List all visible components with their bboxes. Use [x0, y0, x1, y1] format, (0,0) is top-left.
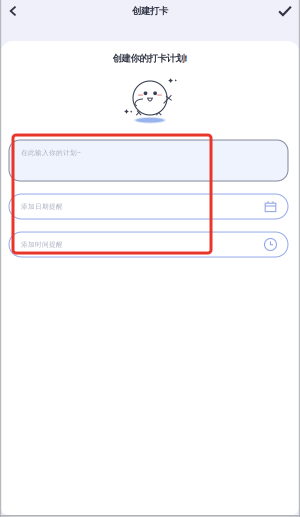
staticText: 创建打卡 — [132, 5, 168, 17]
button[interactable]: Back — [2, 0, 24, 22]
button[interactable]: Save — [273, 0, 297, 22]
button[interactable]: Add time reminder — [9, 232, 288, 257]
button[interactable]: Add date reminder — [9, 194, 288, 219]
staticText: 添加时间提醒 — [21, 240, 63, 249]
staticText: 添加日期提醒 — [21, 202, 63, 211]
staticText: 在此输入你的计划~ — [21, 148, 81, 157]
staticText: 创建你的打卡计划! — [112, 52, 187, 64]
button[interactable]: Plan text field — [9, 140, 288, 181]
